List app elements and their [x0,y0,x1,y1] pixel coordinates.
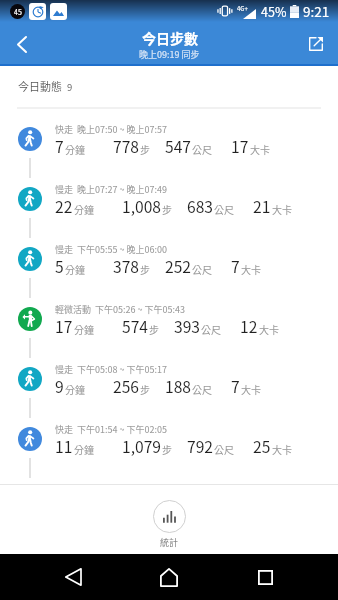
staticText: 公尺 [201,322,221,336]
staticText: 輕微活動 [55,303,92,316]
staticText: 17 [55,315,73,338]
staticText: 分鐘 [65,262,85,276]
staticText: 晚上07:27 ~ 晚上07:49 [77,183,167,196]
staticText: 45% [261,2,287,20]
staticText: 下午05:55 ~ 晚上06:00 [77,243,167,256]
staticText: 統計 [160,536,179,549]
staticText: 大卡 [241,382,261,396]
staticText: 778 [113,135,139,158]
button[interactable]: Home [146,554,192,600]
staticText: 分鐘 [74,202,94,216]
staticText: 公尺 [192,142,212,156]
staticText: 快走 [55,423,74,436]
staticText: 今日動態 [18,78,62,94]
staticText: 683 [187,195,213,218]
staticText: 45 [14,7,22,17]
staticText: 晚上09:19 同步 [139,48,200,61]
staticText: 分鐘 [74,322,94,336]
staticText: 公尺 [214,202,234,216]
staticText: 步 [162,442,172,456]
staticText: 步 [140,142,150,156]
button[interactable]: 統計 [137,485,202,549]
staticText: 1,079 [122,435,161,458]
staticText: 大卡 [272,202,292,216]
staticText: 分鐘 [74,442,94,456]
button[interactable]: Recent apps [242,554,288,600]
staticText: 17 [231,135,249,158]
staticText: 公尺 [214,442,234,456]
button[interactable]: 慢走 [0,235,338,295]
staticText: 393 [174,315,200,338]
staticText: 步 [149,322,159,336]
staticText: 大卡 [241,262,261,276]
staticText: 快走 [55,123,74,136]
button[interactable]: Open in new window [299,27,333,61]
button[interactable]: 快走 [0,115,338,175]
staticText: 25 [253,435,271,458]
staticText: 12 [240,315,258,338]
staticText: 22 [55,195,73,218]
staticText: 4G+ [237,4,248,13]
staticText: 公尺 [192,382,212,396]
staticText: 大卡 [250,142,270,156]
staticText: 下午05:08 ~ 下午05:17 [77,363,167,376]
staticText: 574 [122,315,148,338]
staticText: 慢走 [55,363,74,376]
staticText: 252 [165,255,191,278]
staticText: 256 [113,375,139,398]
staticText: 5 [55,255,64,278]
staticText: 9 [67,80,73,94]
staticText: 9:21 [303,1,330,21]
staticText: 分鐘 [65,142,85,156]
staticText: 下午01:54 ~ 下午02:05 [77,423,167,436]
staticText: 7 [55,135,64,158]
staticText: 慢走 [55,243,74,256]
staticText: 大卡 [259,322,279,336]
button[interactable]: 快走 [0,415,338,475]
staticText: 7 [231,375,240,398]
staticText: 步 [162,202,172,216]
staticText: 792 [187,435,213,458]
staticText: 晚上07:50 ~ 晚上07:57 [77,123,167,136]
staticText: 11 [55,435,73,458]
staticText: 分鐘 [65,382,85,396]
staticText: 1,008 [122,195,161,218]
button[interactable]: Back [50,554,96,600]
button[interactable]: Back [4,27,38,61]
staticText: 9 [55,375,64,398]
staticText: 步 [140,262,150,276]
staticText: 188 [165,375,191,398]
staticText: 7 [231,255,240,278]
staticText: 21 [253,195,271,218]
staticText: 步 [140,382,150,396]
staticText: 378 [113,255,139,278]
button[interactable]: 慢走 [0,175,338,235]
staticText: 547 [165,135,191,158]
button[interactable]: 慢走 [0,355,338,415]
staticText: 公尺 [192,262,212,276]
staticText: 下午05:26 ~ 下午05:43 [95,303,185,316]
staticText: 今日步數 [142,28,198,48]
button[interactable]: 輕微活動 [0,295,338,355]
staticText: 慢走 [55,183,74,196]
staticText: 大卡 [272,442,292,456]
